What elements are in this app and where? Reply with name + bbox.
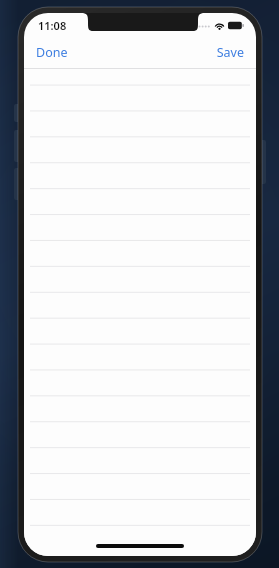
button[interactable] (24, 277, 256, 303)
button[interactable]: Save (204, 38, 256, 67)
button[interactable] (24, 225, 256, 251)
staticText: Done (36, 44, 68, 61)
button[interactable] (24, 147, 256, 173)
button[interactable] (24, 459, 256, 485)
button[interactable] (24, 511, 256, 537)
button[interactable] (24, 485, 256, 511)
button[interactable] (24, 433, 256, 459)
button[interactable] (24, 173, 256, 199)
button[interactable] (24, 407, 256, 433)
button[interactable]: Done (24, 38, 80, 67)
button[interactable] (24, 251, 256, 277)
button[interactable] (24, 199, 256, 225)
staticText: 11:08 (38, 18, 67, 33)
staticText: Save (216, 44, 244, 61)
